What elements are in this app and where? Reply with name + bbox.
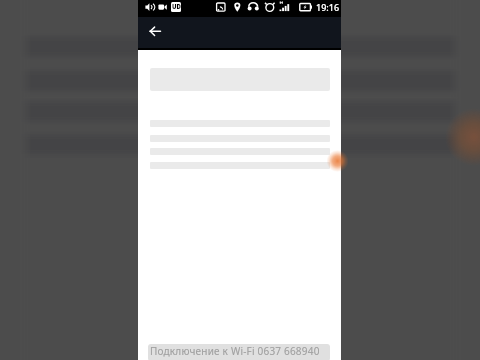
staticText: 19:16	[316, 1, 340, 13]
staticText: UD	[172, 3, 181, 11]
button[interactable]: Add	[330, 150, 344, 172]
staticText: Подключение к Wi-Fi 0637 668940	[150, 344, 320, 358]
button[interactable]: Подключение к Wi-Fi 0637 668940	[148, 344, 330, 360]
button[interactable]: Back	[144, 19, 168, 43]
